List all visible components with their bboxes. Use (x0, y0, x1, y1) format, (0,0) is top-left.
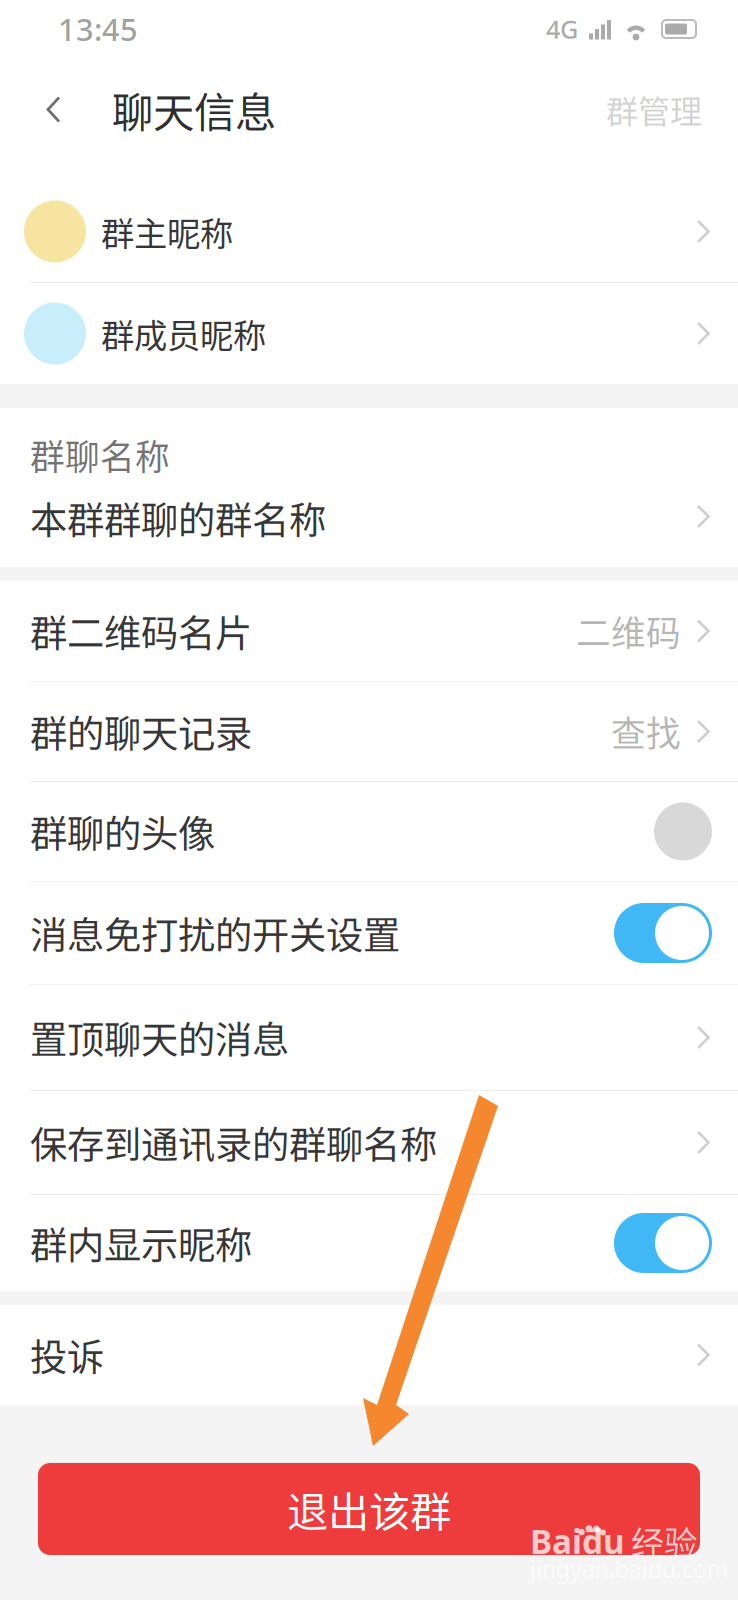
staticText: 保存到通讯录的群聊名称 (30, 1115, 437, 1170)
staticText: 群二维码名片 (30, 604, 252, 658)
staticText: 群内显示昵称 (30, 1216, 252, 1270)
button[interactable]: 群成员昵称 (0, 283, 738, 384)
staticText: 4G (546, 12, 578, 46)
staticText: 消息免打扰的开关设置 (30, 906, 400, 960)
button[interactable]: 退出该群 (38, 1463, 700, 1555)
staticText: 群管理 (606, 86, 702, 133)
staticText: jingyan.baidu.com (530, 1554, 728, 1584)
staticText: 本群群聊的群名称 (30, 491, 326, 545)
staticText: 退出该群 (287, 1479, 451, 1539)
staticText: Baidu (530, 1519, 625, 1563)
staticText: 群聊名称 (30, 430, 170, 480)
staticText: 投诉 (30, 1328, 104, 1382)
staticText: 群聊的头像 (30, 804, 215, 859)
button[interactable]: 群内显示昵称 (0, 1195, 738, 1291)
staticText: 二维码 (576, 606, 681, 656)
button[interactable]: 置顶聊天的消息 (0, 985, 738, 1090)
button[interactable]: 群二维码名片 (0, 581, 738, 681)
staticText: 聊天信息 (112, 80, 276, 139)
button[interactable]: 群聊名称 (0, 408, 738, 567)
button[interactable]: 群管理 (586, 58, 738, 161)
staticText: 查找 (611, 706, 681, 757)
staticText: 置顶聊天的消息 (30, 1010, 289, 1065)
staticText: 经验 (631, 1517, 697, 1565)
button[interactable]: 群主昵称 (0, 181, 738, 282)
button[interactable]: 投诉 (0, 1305, 738, 1405)
staticText: 群的聊天记录 (30, 704, 252, 759)
button[interactable]: Back (0, 58, 112, 161)
button[interactable]: 消息免打扰的开关设置 (0, 882, 738, 984)
button[interactable]: 群的聊天记录 (0, 682, 738, 781)
staticText: 群成员昵称 (101, 309, 266, 358)
staticText: 13:45 (58, 9, 138, 49)
staticText: 群主昵称 (101, 207, 233, 256)
button[interactable]: 保存到通讯录的群聊名称 (0, 1091, 738, 1194)
button[interactable]: 群聊的头像 (0, 782, 738, 881)
